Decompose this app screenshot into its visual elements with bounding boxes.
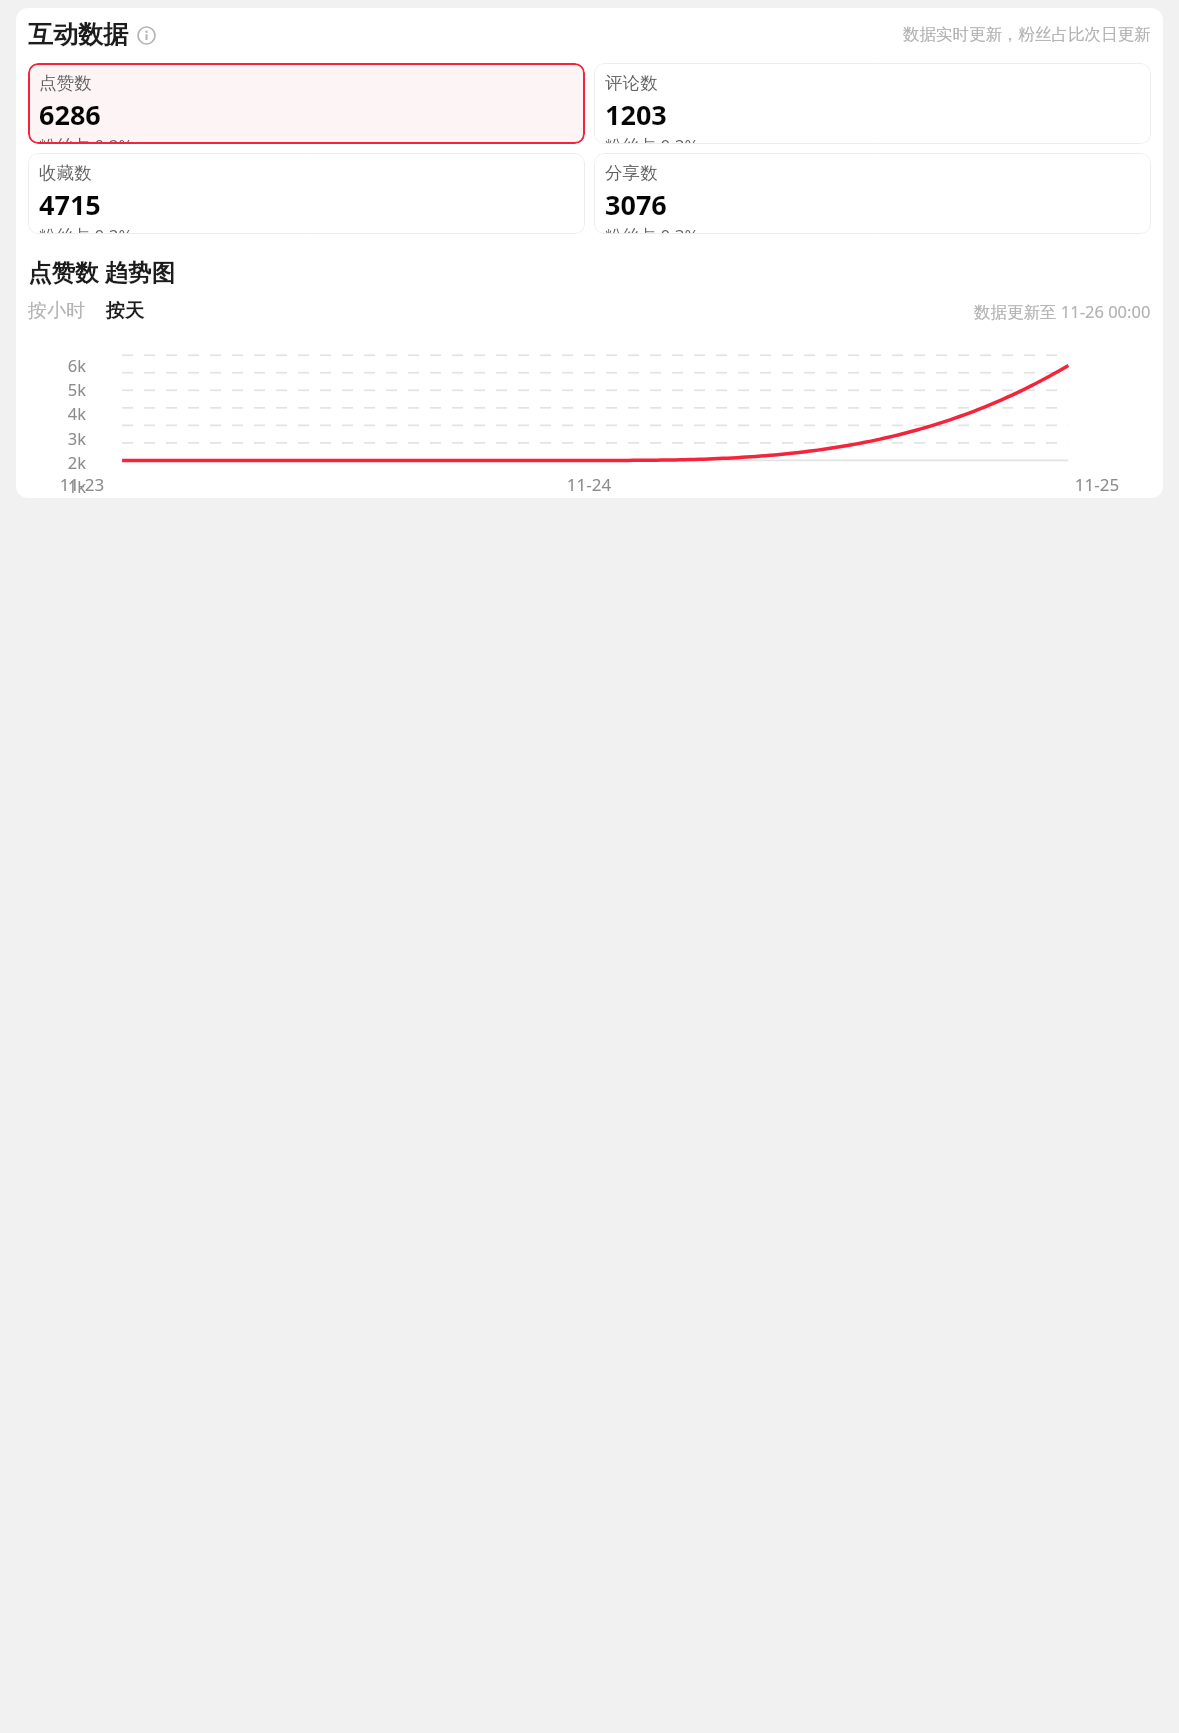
staticText: 评论数: [605, 72, 658, 94]
button[interactable]: 按天: [106, 299, 144, 323]
button[interactable]: 评论数: [594, 63, 1151, 144]
staticText: 数据更新至 11-26 00:00: [974, 300, 1151, 323]
staticText: 粉丝占 0.3%: [605, 224, 699, 234]
staticText: 1k: [20, 475, 86, 497]
staticText: 收藏数: [39, 162, 92, 184]
staticText: 分享数: [605, 162, 658, 184]
staticText: 粉丝占 0.2%: [39, 134, 133, 144]
staticText: 11-25: [1037, 473, 1157, 496]
staticText: 粉丝占 0.2%: [605, 134, 699, 144]
staticText: 5k: [20, 378, 86, 400]
staticText: 点赞数 趋势图: [28, 256, 176, 288]
staticText: 11-23: [22, 473, 142, 496]
staticText: 互动数据: [28, 19, 128, 50]
button[interactable]: 分享数: [594, 153, 1151, 234]
staticText: 按天: [106, 299, 144, 323]
button[interactable]: 点赞数: [28, 63, 585, 144]
staticText: 6k: [20, 354, 86, 376]
staticText: 3076: [605, 186, 667, 223]
staticText: 4k: [20, 402, 86, 424]
staticText: 2k: [20, 451, 86, 473]
staticText: 6286: [39, 96, 101, 133]
staticText: 点赞数: [39, 72, 92, 94]
staticText: 1203: [605, 96, 667, 133]
button[interactable]: 收藏数: [28, 153, 585, 234]
staticText: 3k: [20, 427, 86, 449]
staticText: 11-24: [529, 473, 649, 496]
staticText: 4715: [39, 186, 101, 223]
staticText: 数据实时更新，粉丝占比次日更新: [903, 24, 1151, 45]
staticText: 粉丝占 0.2%: [39, 224, 133, 234]
button[interactable]: 说明: [135, 24, 157, 46]
staticText: 按小时: [28, 299, 85, 323]
button[interactable]: 按小时: [28, 299, 85, 323]
